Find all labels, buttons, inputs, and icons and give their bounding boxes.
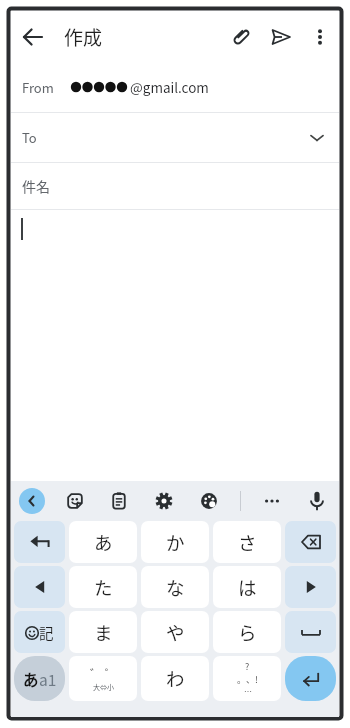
staticText: 。、! [237, 673, 258, 686]
staticText: a1 [39, 668, 57, 690]
staticText: ら [238, 619, 257, 646]
staticText: わ [166, 665, 185, 692]
button[interactable]: さ [213, 521, 281, 563]
button[interactable]: な [141, 566, 209, 608]
button[interactable] [14, 521, 65, 563]
staticText: 件名 [22, 176, 50, 196]
button[interactable]: ? [213, 656, 281, 701]
button[interactable]: あ [69, 521, 137, 563]
button[interactable]: From [11, 62, 339, 112]
button[interactable]: た [69, 566, 137, 608]
staticText: ま [94, 619, 113, 646]
button[interactable]: To [11, 113, 339, 162]
staticText: 大⇔小 [93, 682, 114, 692]
button[interactable] [195, 487, 223, 515]
staticText: 作成 [64, 23, 103, 51]
button[interactable] [285, 611, 336, 653]
button[interactable] [301, 18, 339, 56]
button[interactable]: 件名 [11, 163, 339, 209]
staticText: や [166, 619, 185, 646]
staticText: ? [245, 660, 250, 673]
button[interactable] [11, 15, 55, 59]
button[interactable] [261, 17, 301, 57]
button[interactable]: 記 [14, 611, 65, 653]
button[interactable]: あ [14, 656, 65, 701]
staticText: From [22, 78, 54, 97]
staticText: か [166, 529, 185, 556]
staticText: 記 [39, 622, 54, 643]
staticText: To [22, 128, 37, 147]
staticText: な [166, 574, 185, 601]
button[interactable] [14, 566, 65, 608]
button[interactable] [19, 488, 45, 514]
button[interactable] [258, 487, 286, 515]
button[interactable]: ゛ ゜ [69, 656, 137, 701]
staticText: ゛ ゜ [90, 665, 117, 682]
staticText: た [94, 574, 113, 601]
button[interactable]: わ [141, 656, 209, 701]
button[interactable] [285, 656, 336, 701]
staticText: あ [94, 529, 113, 556]
button[interactable]: か [141, 521, 209, 563]
button[interactable] [303, 487, 331, 515]
staticText: @gmail.com [130, 77, 209, 97]
button[interactable] [221, 17, 261, 57]
button[interactable] [61, 487, 89, 515]
button[interactable]: や [141, 611, 209, 653]
button[interactable] [105, 487, 133, 515]
button[interactable]: ら [213, 611, 281, 653]
staticText: は [238, 574, 257, 601]
button[interactable] [285, 521, 336, 563]
staticText: さ [238, 529, 257, 556]
staticText: あ [23, 668, 39, 690]
button[interactable]: は [213, 566, 281, 608]
button[interactable] [150, 487, 178, 515]
button[interactable]: ま [69, 611, 137, 653]
button[interactable] [285, 566, 336, 608]
staticText: … [244, 686, 252, 698]
